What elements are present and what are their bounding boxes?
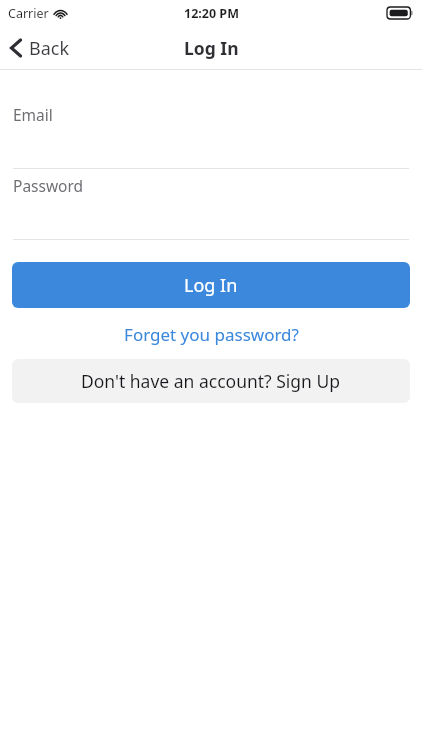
staticText: Log In <box>184 273 238 298</box>
staticText: Log In <box>184 36 239 60</box>
staticText: Carrier <box>8 5 49 22</box>
button[interactable]: Email <box>0 98 422 168</box>
staticText: Forget you password? <box>124 323 299 346</box>
staticText: Password <box>13 175 84 196</box>
staticText: Back <box>29 36 70 61</box>
staticText: Email <box>13 104 53 125</box>
staticText: Don't have an account? Sign Up <box>81 369 341 393</box>
button[interactable]: Password <box>0 169 422 239</box>
button[interactable]: Back <box>0 26 82 70</box>
button[interactable]: Don't have an account? Sign Up <box>12 359 410 403</box>
staticText: 12:20 PM <box>184 5 239 22</box>
button[interactable]: Log In <box>12 262 410 308</box>
button[interactable]: Forget you password? <box>112 321 311 348</box>
